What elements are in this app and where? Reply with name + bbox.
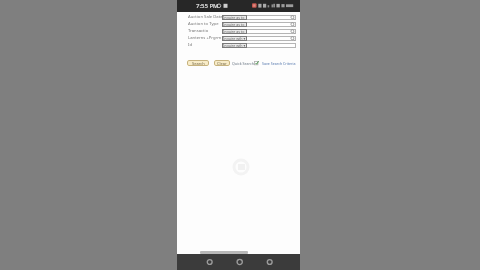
button[interactable] bbox=[222, 43, 296, 48]
button[interactable]: Quick Search bbox=[232, 61, 254, 66]
staticText: Transactio bbox=[188, 28, 209, 34]
staticText: 7:55 PM bbox=[196, 2, 219, 10]
button[interactable] bbox=[222, 29, 296, 34]
button[interactable]: Inquire wth ▾ bbox=[222, 36, 247, 41]
button[interactable] bbox=[222, 36, 296, 41]
staticText: Clear bbox=[217, 61, 227, 66]
button[interactable] bbox=[222, 22, 296, 27]
button[interactable] bbox=[233, 255, 247, 269]
button[interactable]: Clear bbox=[214, 60, 230, 66]
staticText: Auction Sale Date bbox=[188, 14, 223, 20]
staticText: Search bbox=[192, 61, 205, 66]
staticText: Auction to Type bbox=[188, 21, 219, 27]
staticText: Inquire wth ▾ bbox=[223, 36, 246, 41]
staticText: Save Search Criteria bbox=[262, 61, 296, 66]
button[interactable]: Inquire as to st ▾ bbox=[222, 22, 247, 27]
staticText: Inquire as to st ▾ bbox=[223, 29, 248, 34]
button[interactable]: Save Search Criteria bbox=[262, 61, 296, 66]
button[interactable] bbox=[222, 15, 296, 20]
staticText: Quick Search bbox=[232, 61, 254, 66]
button[interactable]: Inquire as to st ▾ bbox=[222, 15, 247, 20]
staticText: Id bbox=[188, 42, 192, 48]
staticText: Inquire as to st ▾ bbox=[223, 15, 248, 20]
button[interactable]: Inquire as to st ▾ bbox=[222, 29, 247, 34]
staticText: Lanterns +Prgrm bbox=[188, 35, 222, 41]
staticText: Inquire as to st ▾ bbox=[223, 22, 248, 27]
button[interactable]: Inquire wth ▾ bbox=[222, 43, 247, 48]
staticText: Inquire wth ▾ bbox=[223, 43, 246, 48]
button[interactable]: Search bbox=[187, 60, 209, 66]
button[interactable] bbox=[203, 255, 217, 269]
button[interactable] bbox=[263, 255, 277, 269]
